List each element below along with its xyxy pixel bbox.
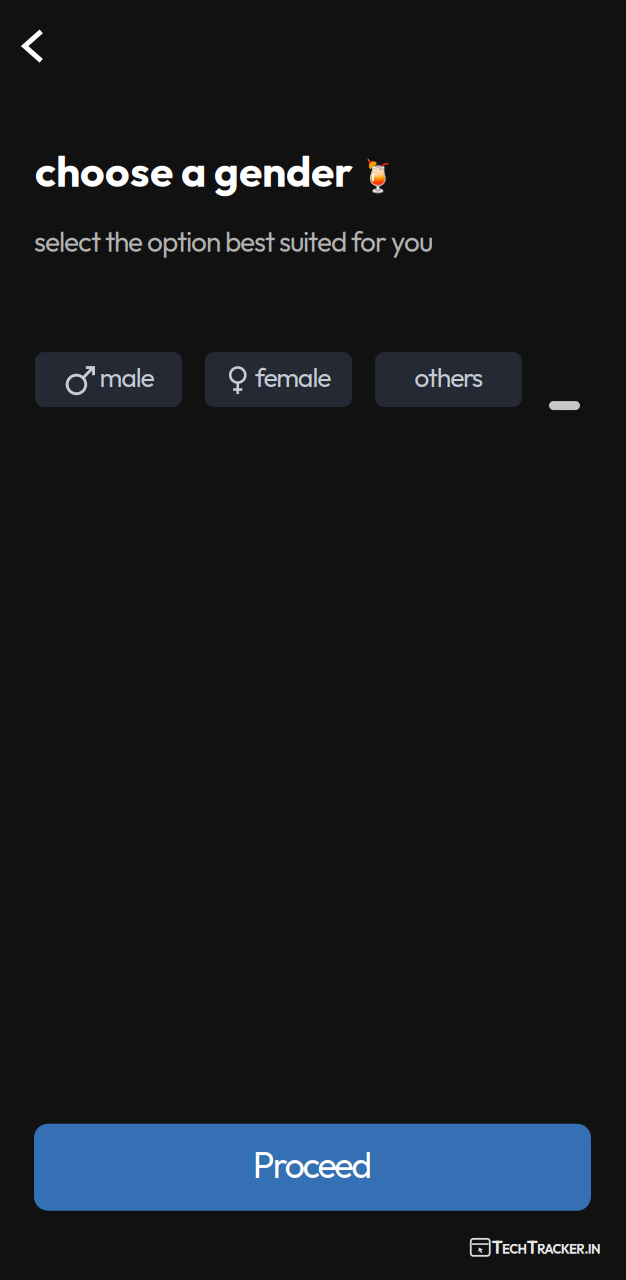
staticText: female: [255, 360, 331, 394]
staticText: TECHTRACKER.IN: [492, 1237, 601, 1258]
button[interactable]: female: [205, 352, 352, 407]
staticText: select the option best suited for you: [34, 224, 433, 259]
button[interactable]: others: [375, 352, 522, 407]
staticText: Proceed: [253, 1142, 372, 1187]
staticText: male: [99, 360, 154, 394]
button[interactable]: Proceed: [34, 1124, 591, 1211]
staticText: others: [414, 360, 483, 394]
staticText: 🍹: [359, 159, 397, 195]
staticText: choose a gender: [35, 144, 353, 198]
button[interactable]: male: [35, 352, 182, 407]
button[interactable]: Back: [0, 0, 63, 79]
